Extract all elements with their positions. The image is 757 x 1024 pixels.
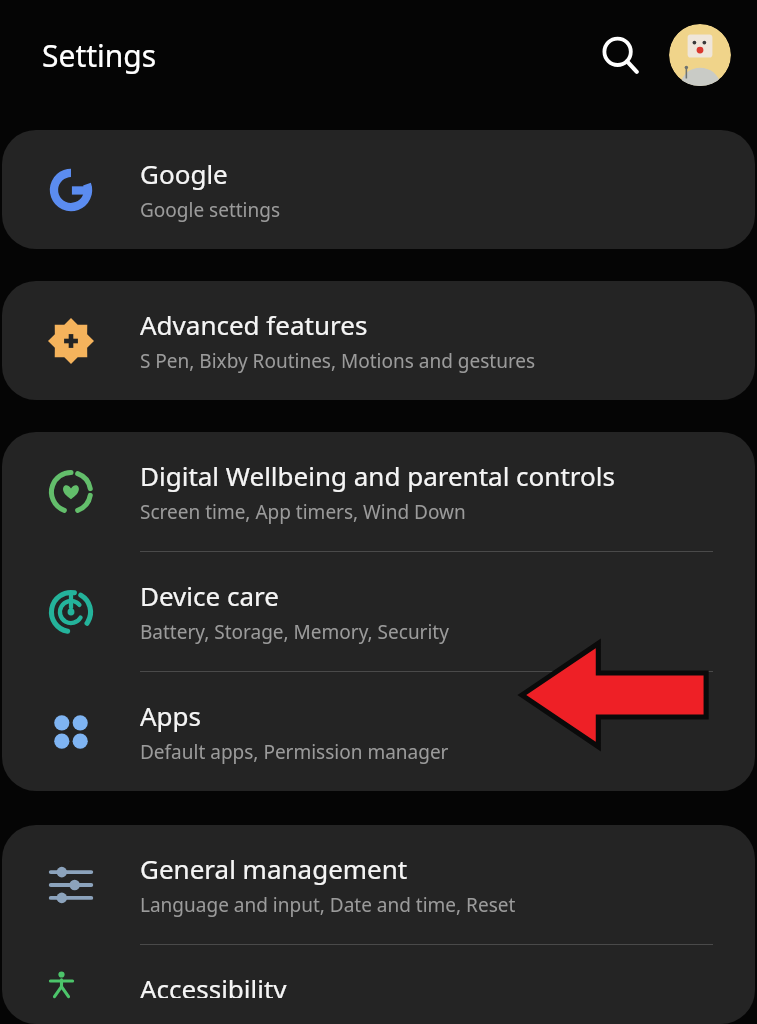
staticText: S Pen, Bixby Routines, Motions and gestu…	[140, 348, 536, 374]
staticText: Default apps, Permission manager	[140, 739, 449, 765]
button[interactable]: Advanced features	[2, 281, 755, 400]
staticText: Google	[140, 156, 228, 191]
button[interactable]: Accessibility	[2, 945, 755, 1024]
staticText: Accessibility	[140, 971, 287, 998]
staticText: Digital Wellbeing and parental controls	[140, 458, 615, 493]
button[interactable]: Device care	[2, 552, 755, 671]
staticText: Screen time, App timers, Wind Down	[140, 499, 466, 525]
staticText: General management	[140, 851, 408, 886]
button[interactable]: General management	[2, 825, 755, 944]
staticText: Settings	[42, 35, 157, 76]
staticText: Google settings	[140, 197, 281, 223]
button[interactable]: Apps	[2, 672, 755, 791]
button[interactable]: Search	[589, 24, 651, 86]
staticText: Battery, Storage, Memory, Security	[140, 619, 449, 645]
button[interactable]: Google	[2, 130, 755, 249]
staticText: Device care	[140, 578, 279, 613]
button[interactable]: Digital Wellbeing and parental controls	[2, 432, 755, 551]
staticText: Language and input, Date and time, Reset	[140, 892, 516, 918]
staticText: Apps	[140, 698, 202, 733]
button[interactable]: Account	[669, 24, 731, 86]
staticText: Advanced features	[140, 307, 368, 342]
